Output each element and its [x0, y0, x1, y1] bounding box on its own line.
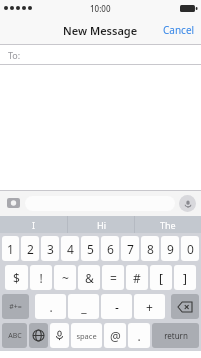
staticText: - [115, 299, 119, 315]
staticText: return [164, 330, 188, 341]
button[interactable]: Cancel [163, 23, 195, 37]
button[interactable]: 2 [21, 236, 39, 261]
staticText: _ [81, 299, 87, 315]
staticText: $ [13, 270, 20, 286]
button[interactable]: ~ [54, 265, 76, 290]
staticText: Cancel [163, 23, 195, 37]
button[interactable]: 5 [81, 236, 99, 261]
staticText: ~ [62, 270, 69, 286]
staticText: @ [110, 328, 121, 344]
button[interactable]: + [134, 294, 165, 319]
staticText: ] [183, 270, 187, 286]
button[interactable]: 7 [121, 236, 139, 261]
button[interactable]: Change keyboard language [29, 323, 48, 348]
button[interactable]: Camera [5, 195, 21, 211]
button[interactable]: & [78, 265, 100, 290]
staticText: 5 [87, 241, 94, 257]
staticText: New Message [63, 23, 138, 38]
staticText: #+= [9, 302, 22, 312]
staticText: 2 [27, 241, 34, 257]
button[interactable]: ! [30, 265, 52, 290]
staticText: # [133, 270, 141, 286]
button[interactable]: 6 [101, 236, 119, 261]
button[interactable]: [ [150, 265, 172, 290]
button[interactable]: space [71, 323, 102, 348]
staticText: . [49, 299, 53, 315]
button[interactable]: 8 [141, 236, 159, 261]
staticText: 9 [167, 241, 174, 257]
staticText: [ [159, 270, 163, 286]
staticText: 1 [7, 241, 14, 257]
staticText: 3 [47, 241, 54, 257]
staticText: & [85, 270, 94, 286]
staticText: 6 [107, 241, 114, 257]
button[interactable]: = [102, 265, 124, 290]
button[interactable]: _ [68, 294, 99, 319]
button[interactable]: # [126, 265, 148, 290]
button[interactable]: - [101, 294, 132, 319]
button[interactable]: 1 [2, 236, 19, 261]
button[interactable]: 3 [41, 236, 59, 261]
staticText: 4 [67, 241, 74, 257]
button[interactable]: Voice input [179, 195, 196, 212]
staticText: The [160, 219, 176, 231]
button[interactable]: 4 [61, 236, 79, 261]
button[interactable]: Dictate [50, 323, 69, 348]
button[interactable]: Hi [68, 216, 134, 233]
staticText: = [110, 270, 117, 286]
button[interactable]: 9 [161, 236, 179, 261]
button[interactable]: #+= [2, 294, 29, 319]
staticText: space [76, 331, 97, 341]
button[interactable]: To: [0, 45, 201, 64]
staticText: + [146, 299, 153, 315]
staticText: ABC [8, 331, 22, 341]
button[interactable]: . [128, 323, 150, 348]
button[interactable]: I [0, 216, 67, 233]
button[interactable]: @ [104, 323, 126, 348]
staticText: I [32, 219, 36, 231]
staticText: 7 [127, 241, 134, 257]
staticText: ! [39, 270, 43, 286]
button[interactable]: ABC [2, 323, 27, 348]
staticText: To: [8, 49, 21, 61]
button[interactable]: 0 [181, 236, 199, 261]
button[interactable]: $ [5, 265, 28, 290]
staticText: 8 [147, 241, 154, 257]
staticText: 0 [187, 241, 194, 257]
button[interactable]: . [35, 294, 66, 319]
button[interactable]: return [152, 323, 199, 348]
button[interactable]: ] [174, 265, 196, 290]
staticText: 10:00 [90, 3, 111, 14]
button[interactable]: The [135, 216, 201, 233]
staticText: . [137, 328, 141, 344]
button[interactable]: Delete [171, 294, 199, 319]
staticText: Hi [97, 219, 106, 231]
